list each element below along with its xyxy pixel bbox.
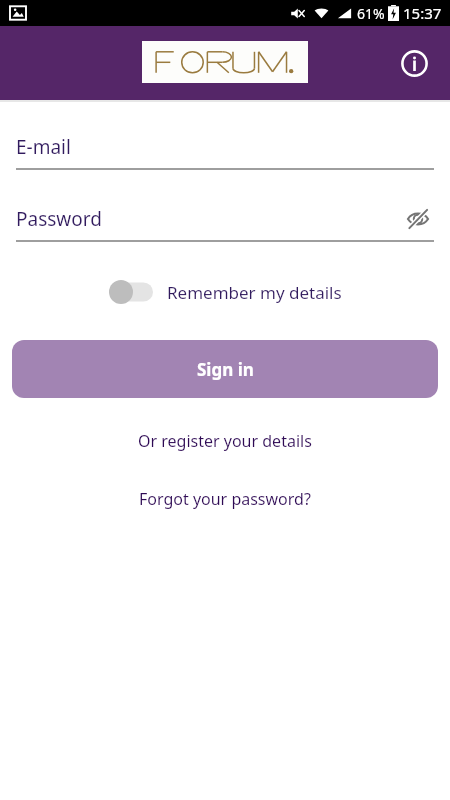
staticText: E-mail [16,134,71,160]
staticText: Password [16,206,102,232]
button[interactable]: Show password [402,204,434,234]
staticText: 15:37 [403,3,442,23]
button[interactable]: Password [16,204,434,242]
staticText: Or register your details [138,430,312,452]
button[interactable]: Information [392,41,436,85]
staticText: 61% [357,4,385,23]
button[interactable]: Forgot your password? [127,482,323,516]
button[interactable]: Or register your details [126,424,324,458]
staticText: Sign in [197,358,254,381]
button[interactable]: Sign in [12,340,438,398]
button[interactable]: Remember my details [109,274,342,310]
staticText: Forgot your password? [139,488,311,510]
button[interactable]: E-mail [16,132,434,170]
staticText: Remember my details [167,281,342,304]
